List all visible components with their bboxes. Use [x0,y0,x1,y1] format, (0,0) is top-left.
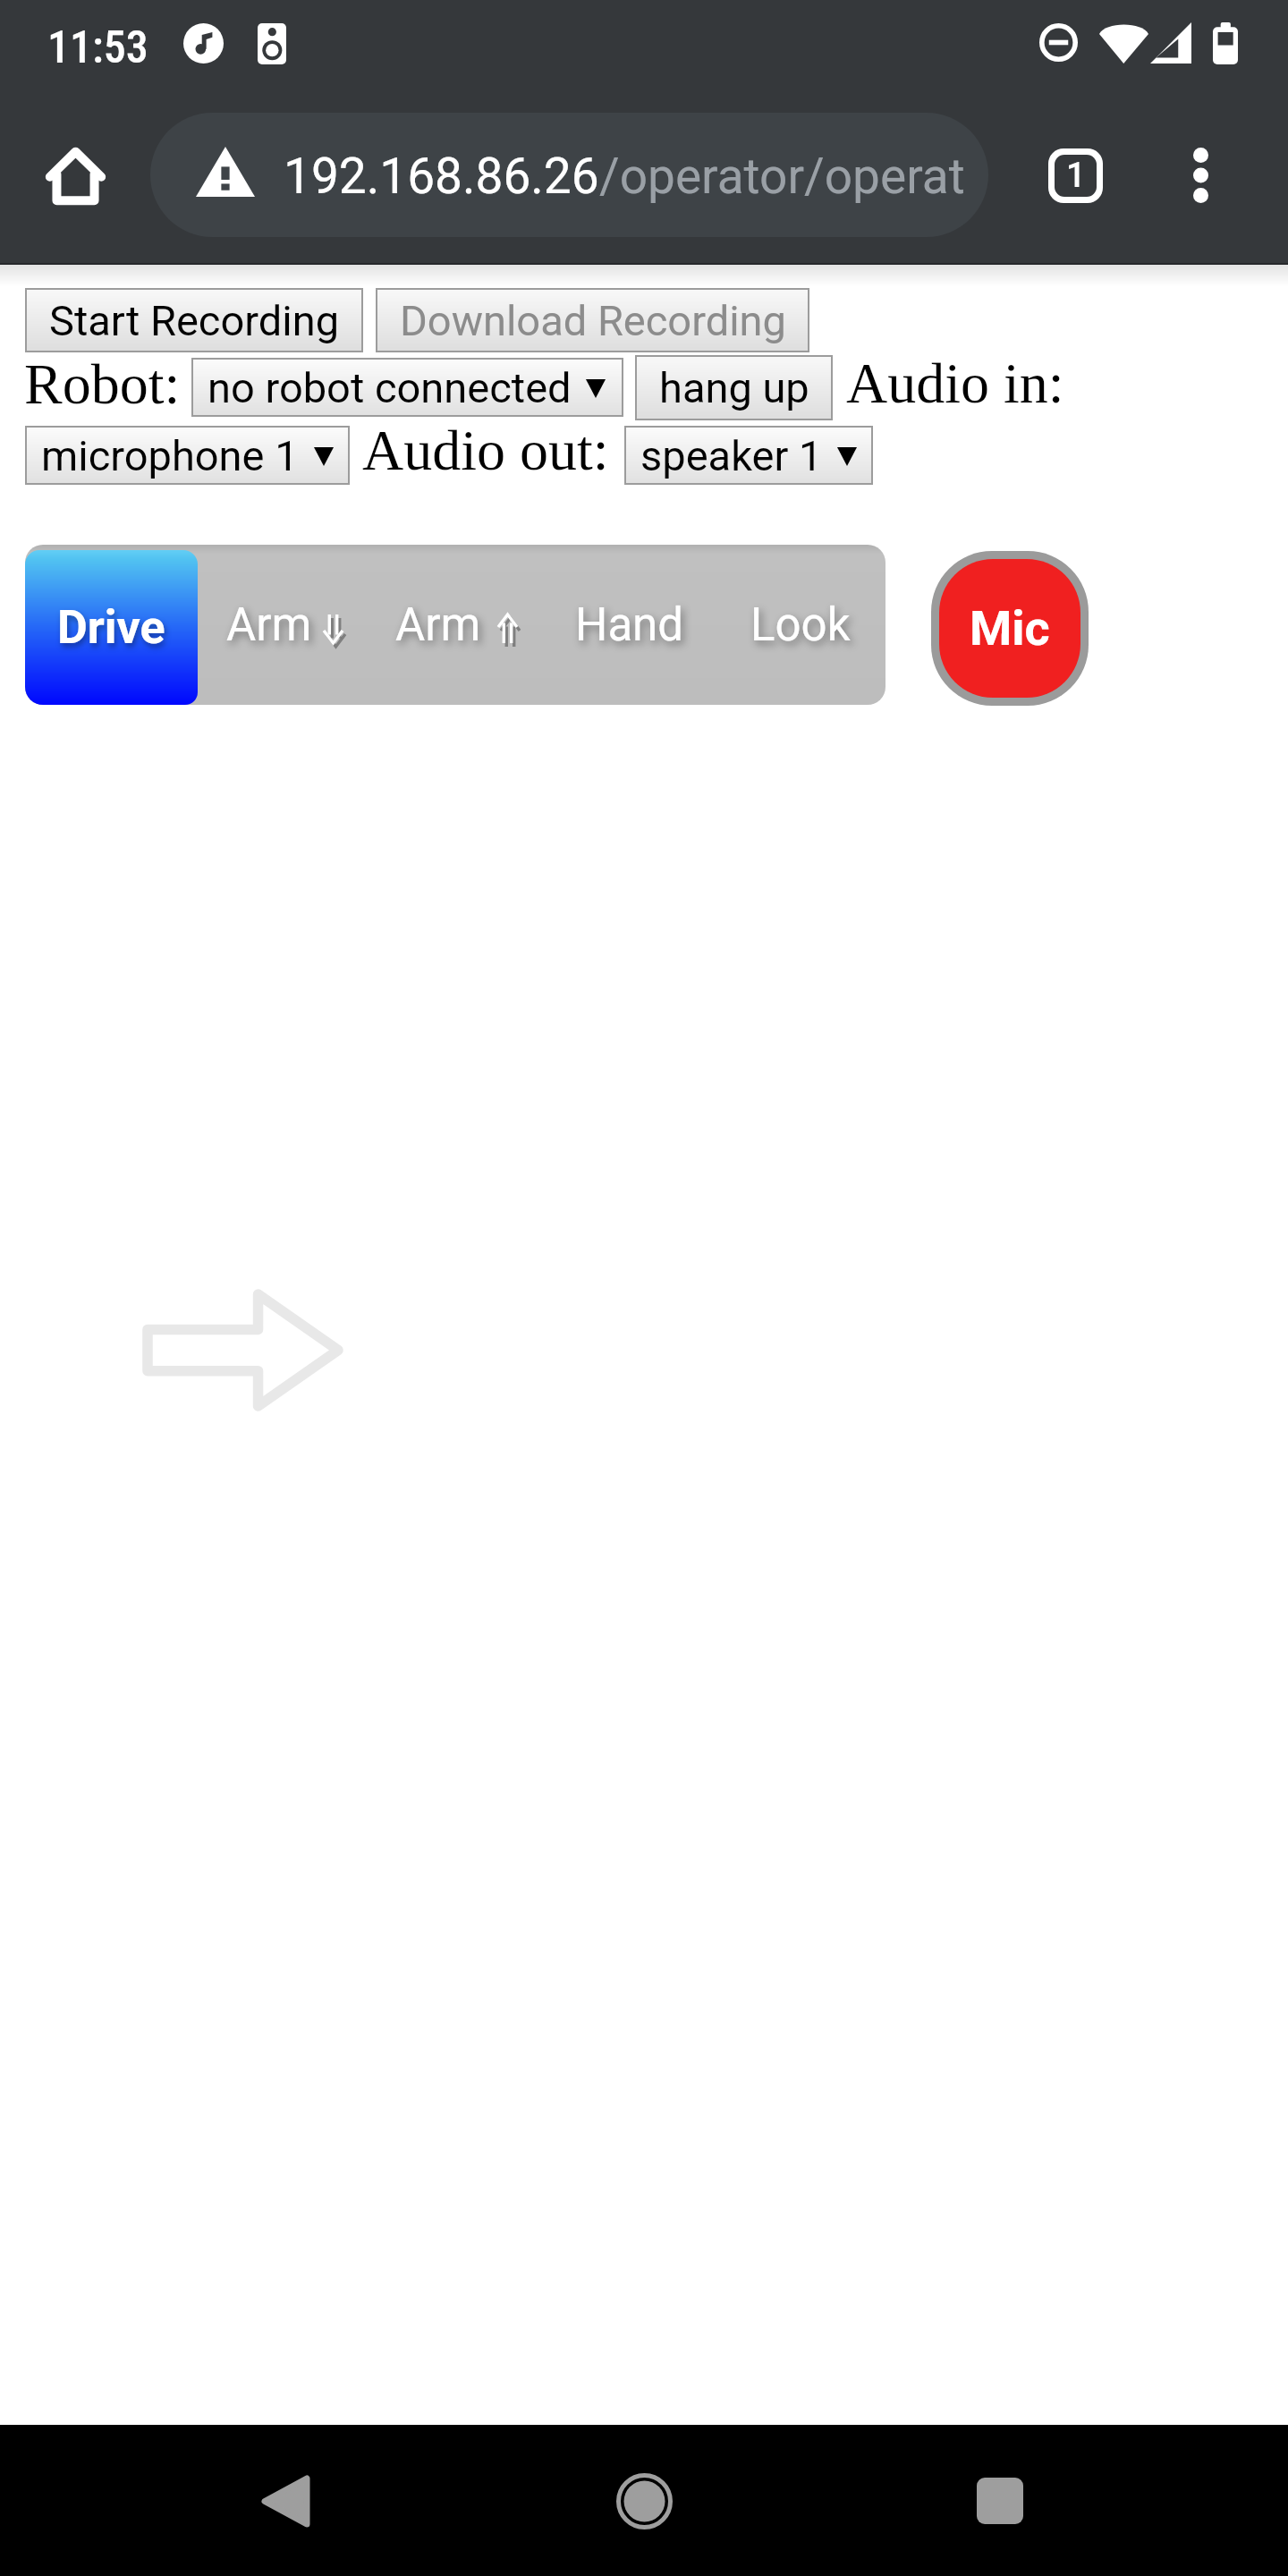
staticText: Audio in: [846,352,1064,415]
button[interactable]: Drive [25,550,198,705]
button[interactable]: no robot connected [193,360,622,415]
button[interactable]: Back [213,2447,356,2555]
staticText: Mic [970,600,1050,657]
button[interactable]: Home [572,2447,716,2555]
button[interactable]: Mic [939,559,1080,698]
button[interactable]: Recent apps [928,2447,1072,2555]
staticText: microphone 1 [41,431,299,480]
button[interactable]: hang up [637,357,831,419]
staticText: Look [750,598,851,652]
staticText: hang up [659,363,809,412]
staticText: Arm [395,598,481,652]
button[interactable]: Look [724,545,876,705]
button[interactable]: Hand [548,545,700,705]
button[interactable]: Start Recording [27,290,361,351]
button[interactable]: speaker 1 [626,428,871,483]
button[interactable]: Download Recording [377,290,808,351]
button[interactable]: Arm [199,545,352,705]
staticText: Robot: [24,352,181,416]
staticText: no robot connected [208,363,572,412]
staticText: Audio out: [362,419,609,482]
staticText: Drive [57,600,165,655]
button[interactable]: 192.168.86.26 [150,113,988,237]
staticText: Download Recording [400,296,786,345]
staticText: 11:53 [47,21,148,74]
staticText: Arm [226,598,312,652]
button[interactable]: microphone 1 [27,428,348,483]
button[interactable]: Tabs [1021,122,1129,229]
staticText: 1 [1066,156,1086,196]
staticText: /operator/operat [599,148,965,205]
button[interactable]: More options [1147,122,1254,229]
staticText: Start Recording [49,296,340,345]
button[interactable]: Arm [369,545,525,705]
staticText: Hand [575,598,684,652]
staticText: speaker 1 [640,431,823,480]
button[interactable]: Home [21,122,129,229]
staticText: 192.168.86.26 [284,148,599,205]
